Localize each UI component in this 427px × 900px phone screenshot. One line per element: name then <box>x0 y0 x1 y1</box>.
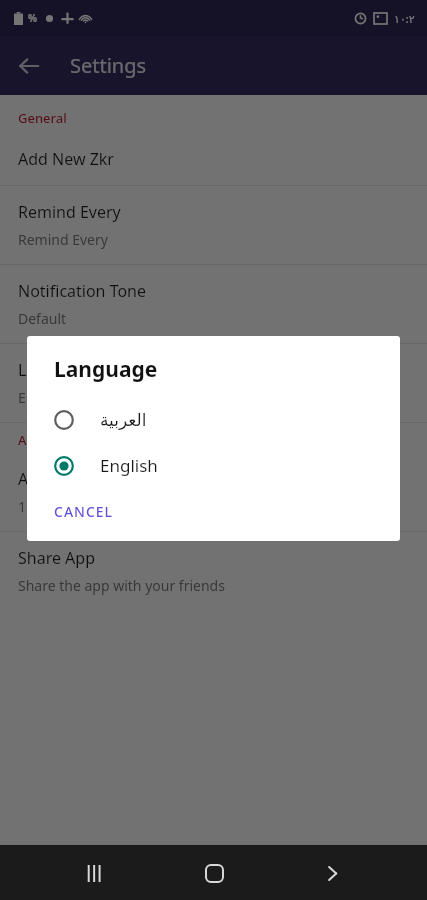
staticText: Remind Every <box>18 230 108 249</box>
button[interactable]: Back <box>308 849 356 897</box>
staticText: English <box>100 454 158 477</box>
staticText: General <box>18 109 67 127</box>
button[interactable]: Add New Zkr <box>0 133 427 185</box>
button[interactable]: Recent apps <box>71 849 119 897</box>
staticText: CANCEL <box>54 502 114 521</box>
staticText: Add New Zkr <box>18 148 114 170</box>
button[interactable]: العربية <box>27 398 400 442</box>
staticText: Share the app with your friends <box>18 576 225 595</box>
staticText: % <box>28 11 38 25</box>
staticText: 1.0.0 <box>18 497 50 516</box>
button[interactable]: Language <box>0 344 427 422</box>
staticText: Default <box>18 309 67 328</box>
staticText: العربية <box>100 410 147 430</box>
staticText: Remind Every <box>18 201 121 223</box>
staticText: English <box>18 388 66 407</box>
button[interactable]: Home <box>190 849 238 897</box>
staticText: ١٠:٢ <box>394 11 415 26</box>
staticText: App Version <box>18 468 109 490</box>
button[interactable]: Share App <box>0 532 427 610</box>
staticText: About <box>18 431 56 449</box>
staticText: Language <box>18 359 93 381</box>
button[interactable]: Remind Every <box>0 186 427 264</box>
button[interactable]: Notification Tone <box>0 265 427 343</box>
button[interactable]: Back <box>6 43 52 89</box>
button[interactable]: CANCEL <box>41 495 127 528</box>
staticText: Settings <box>70 52 147 79</box>
staticText: Notification Tone <box>18 280 147 302</box>
button[interactable]: English <box>27 442 400 489</box>
button[interactable]: App Version <box>0 453 427 531</box>
staticText: Share App <box>18 547 96 569</box>
staticText: Language <box>54 355 158 384</box>
